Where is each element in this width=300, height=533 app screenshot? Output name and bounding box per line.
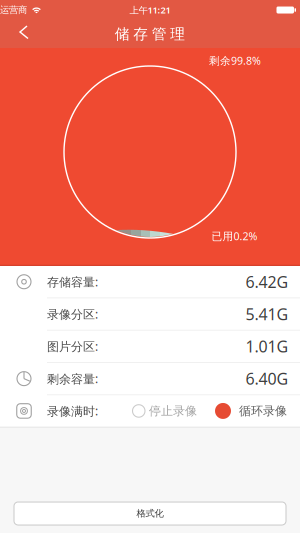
staticText: 已用0.2% (211, 229, 257, 243)
staticText: 6.40G (245, 368, 288, 389)
button[interactable]: 格式化 (0, 502, 300, 525)
staticText: 循环录像 (239, 404, 287, 418)
staticText: 图片分区: (47, 338, 98, 354)
staticText: 停止录像 (149, 404, 197, 418)
button[interactable]: 停止录像 (132, 404, 197, 418)
button[interactable]: Back (0, 20, 29, 44)
staticText: 6.42G (245, 271, 288, 292)
staticText: 存储容量: (47, 274, 98, 290)
staticText: 录像满时: (47, 403, 98, 419)
staticText: 剩余容量: (47, 371, 98, 387)
button[interactable]: 循环录像 (197, 403, 287, 419)
staticText: 格式化 (136, 508, 163, 519)
staticText: 录像分区: (47, 306, 98, 322)
staticText: 1.01G (245, 336, 288, 357)
staticText: 剩余99.8% (209, 53, 261, 68)
staticText: 上午11:21 (129, 4, 170, 16)
staticText: 储存管理 (115, 25, 185, 43)
staticText: 5.41G (245, 303, 288, 325)
staticText: 运营商 (0, 4, 27, 16)
